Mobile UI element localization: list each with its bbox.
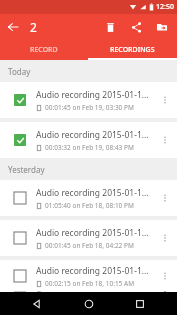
staticText: RECORDINGS: [110, 45, 155, 55]
button[interactable]: Share: [123, 14, 149, 40]
button[interactable]: More options: [153, 226, 177, 250]
staticText: Audio recording 2015-01-18 10...: [36, 265, 153, 277]
button[interactable]: More options: [153, 264, 177, 288]
staticText: 00:02:15 on Feb 18, 10:15 AM: [45, 279, 135, 288]
staticText: Audio recording 2015-01-19 08...: [36, 129, 153, 141]
button[interactable]: Delete: [97, 14, 123, 40]
button[interactable]: More options: [153, 186, 177, 210]
button[interactable]: More options: [153, 88, 177, 112]
staticText: Audio recording 2015-01-19 03...: [36, 89, 153, 101]
button[interactable]: Move to folder: [149, 14, 175, 40]
button[interactable]: Back: [22, 292, 52, 315]
button[interactable]: Back: [0, 14, 26, 40]
staticText: 00:03:32 on Feb 19, 08:43 PM: [45, 143, 134, 152]
staticText: Audio recording 2015-01-18 04...: [36, 227, 153, 239]
button[interactable]: Select recording: [10, 228, 30, 248]
button[interactable]: Select recording: [0, 122, 177, 158]
button[interactable]: Select recording: [10, 188, 30, 208]
staticText: 00:01:45 on Feb 19, 03:30 PM: [45, 103, 134, 112]
button[interactable]: Select recording: [0, 180, 177, 216]
staticText: Audio recording 2015-01-18 08...: [36, 187, 153, 199]
button[interactable]: Select recording: [0, 82, 177, 118]
staticText: Today: [8, 66, 31, 77]
button[interactable]: Home: [74, 292, 104, 315]
button[interactable]: Select recording: [10, 266, 30, 286]
button[interactable]: Select recording: [0, 220, 177, 256]
staticText: 2: [30, 19, 37, 35]
button[interactable]: Recent apps: [125, 292, 155, 315]
button[interactable]: More options: [153, 128, 177, 152]
button[interactable]: Select recording: [10, 90, 30, 110]
button[interactable]: Select recording: [10, 130, 30, 150]
staticText: 00:01:45 on Feb 18, 04:22 PM: [45, 241, 134, 250]
button[interactable]: Select recording: [0, 260, 177, 292]
button[interactable]: RECORD: [0, 40, 88, 60]
staticText: RECORD: [30, 45, 58, 55]
staticText: Yesterday: [8, 164, 45, 175]
button[interactable]: RECORDINGS: [88, 40, 177, 60]
staticText: 01:05:40 on Feb 18, 08:10 PM: [45, 201, 134, 210]
staticText: 12:50: [156, 2, 174, 12]
